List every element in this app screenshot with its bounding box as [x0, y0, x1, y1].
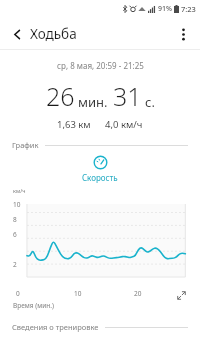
- staticText: Сведения о тренировке: [12, 322, 99, 332]
- staticText: 7:23: [181, 4, 196, 14]
- staticText: 10: [74, 289, 82, 298]
- staticText: График: [12, 140, 39, 150]
- staticText: Ходьба: [30, 25, 77, 43]
- staticText: мин.: [78, 93, 108, 111]
- staticText: 8: [13, 215, 17, 224]
- staticText: 26: [46, 79, 75, 113]
- staticText: 0: [16, 289, 20, 298]
- staticText: 31: [113, 79, 142, 113]
- staticText: Время (мин.): [13, 301, 54, 310]
- staticText: с.: [145, 93, 155, 111]
- button[interactable]: Дополнительно: [171, 22, 195, 46]
- staticText: 2: [13, 260, 17, 269]
- staticText: 20: [134, 289, 142, 298]
- button[interactable]: Скорость: [0, 155, 200, 183]
- staticText: 4,0 км/ч: [105, 118, 143, 131]
- staticText: 1,63 км: [57, 118, 91, 131]
- staticText: 10: [13, 200, 21, 209]
- button[interactable]: км/ч: [12, 187, 188, 287]
- button[interactable]: Развернуть график: [175, 289, 188, 302]
- staticText: 91%: [158, 4, 172, 14]
- staticText: 6: [13, 230, 17, 239]
- staticText: Скорость: [82, 172, 118, 183]
- staticText: км/ч: [13, 187, 26, 194]
- button[interactable]: Назад: [6, 23, 28, 45]
- staticText: ср, 8 мая, 20:59 - 21:25: [57, 60, 144, 71]
